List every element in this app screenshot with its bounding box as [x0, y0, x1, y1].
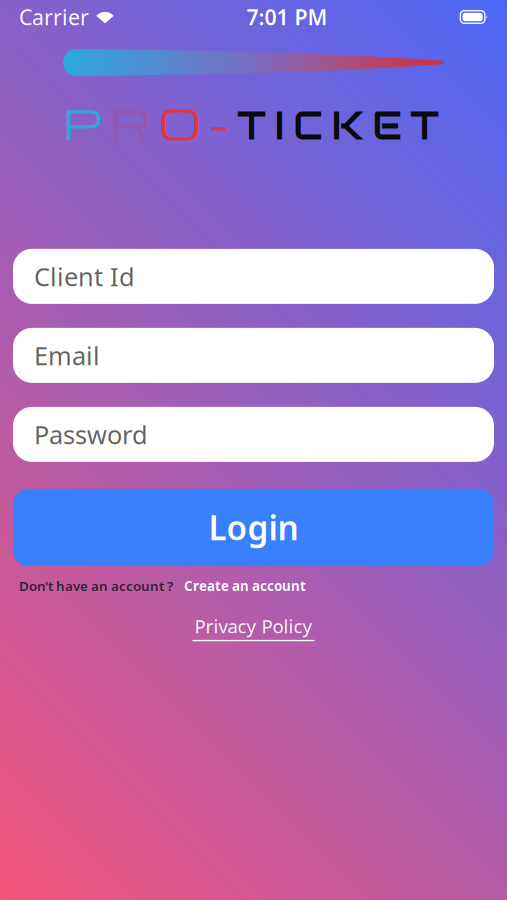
staticText: R — [110, 94, 151, 151]
staticText: O — [159, 94, 201, 151]
button[interactable]: Login — [13, 489, 494, 566]
staticText: I — [274, 100, 285, 151]
button[interactable]: Client Id — [13, 249, 494, 304]
staticText: K — [331, 100, 364, 151]
staticText: P — [63, 94, 102, 151]
button[interactable]: Password — [13, 407, 494, 462]
staticText: Client Id — [34, 260, 135, 293]
staticText: Privacy Policy — [194, 614, 312, 638]
staticText: Login — [208, 505, 298, 549]
button[interactable]: Create an account — [184, 577, 306, 595]
button[interactable]: Privacy Policy — [192, 614, 314, 641]
staticText: Password — [34, 418, 148, 451]
staticText: Email — [34, 339, 100, 372]
staticText: E — [372, 100, 402, 151]
staticText: - — [209, 94, 229, 151]
staticText: Create an account — [184, 577, 306, 595]
staticText: T — [410, 100, 439, 151]
staticText: Don't have an account ? — [19, 577, 173, 595]
staticText: T — [237, 100, 266, 151]
staticText: Carrier — [19, 3, 89, 31]
button[interactable]: Email — [13, 328, 494, 383]
staticText: 7:01 PM — [246, 3, 327, 31]
staticText: C — [293, 100, 323, 151]
